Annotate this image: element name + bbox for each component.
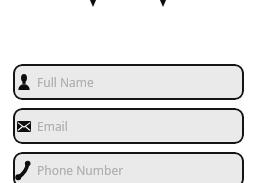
staticText: Phone Number [37, 162, 124, 178]
other: Phone Number [15, 161, 32, 179]
button[interactable]: Open first dropdown [89, 0, 97, 7]
button[interactable]: Email [13, 108, 244, 144]
staticText: Email [37, 118, 68, 134]
button[interactable]: Full Name [13, 64, 244, 100]
staticText: Full Name [37, 74, 94, 90]
button[interactable]: Phone Number [13, 152, 244, 183]
other: Full Name [15, 73, 32, 91]
other: Email [15, 117, 32, 135]
button[interactable]: Open second dropdown [159, 0, 167, 7]
